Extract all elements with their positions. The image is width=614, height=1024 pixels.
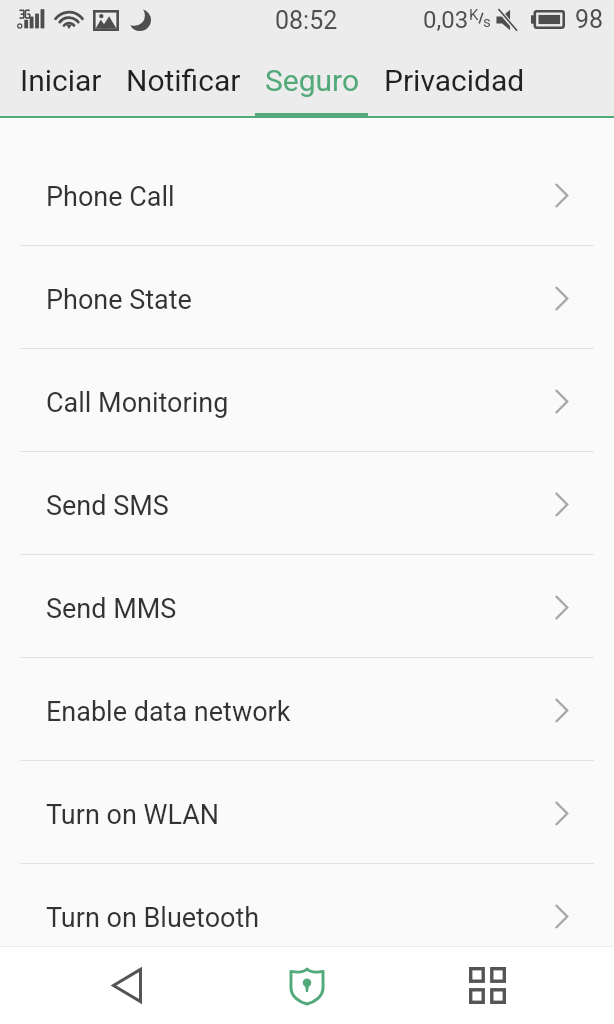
staticText: s bbox=[483, 13, 491, 31]
staticText: Phone State bbox=[46, 284, 192, 316]
staticText: Enable data network bbox=[46, 696, 291, 728]
staticText: Turn on WLAN bbox=[46, 799, 220, 831]
button[interactable]: Phone Call bbox=[0, 143, 614, 246]
staticText: Turn on Bluetooth bbox=[46, 902, 260, 934]
button[interactable]: Recent apps bbox=[447, 947, 527, 1024]
button[interactable]: Notificar bbox=[114, 44, 253, 116]
staticText: Send SMS bbox=[46, 490, 169, 522]
button[interactable]: Turn on Bluetooth bbox=[0, 864, 614, 946]
button[interactable]: Enable data network bbox=[0, 658, 614, 761]
button[interactable]: Call Monitoring bbox=[0, 349, 614, 452]
button[interactable]: Security bbox=[267, 947, 347, 1024]
button[interactable]: Send MMS bbox=[0, 555, 614, 658]
staticText: Seguro bbox=[265, 63, 360, 98]
staticText: Send MMS bbox=[46, 593, 177, 625]
button[interactable]: Back bbox=[87, 947, 167, 1024]
button[interactable]: Iniciar bbox=[8, 44, 114, 116]
button[interactable]: Turn on WLAN bbox=[0, 761, 614, 864]
button[interactable]: Seguro bbox=[253, 44, 372, 116]
staticText: Iniciar bbox=[20, 63, 102, 98]
button[interactable]: Send SMS bbox=[0, 452, 614, 555]
button[interactable]: Privacidad bbox=[372, 44, 537, 116]
staticText: Notificar bbox=[126, 63, 241, 98]
staticText: Call Monitoring bbox=[46, 387, 229, 419]
staticText: K bbox=[469, 6, 479, 24]
button[interactable]: Phone State bbox=[0, 246, 614, 349]
staticText: 0,03 bbox=[423, 6, 469, 34]
staticText: 98 bbox=[575, 5, 604, 34]
staticText: Phone Call bbox=[46, 181, 175, 213]
staticText: 08:52 bbox=[275, 6, 338, 35]
staticText: Privacidad bbox=[384, 63, 525, 98]
